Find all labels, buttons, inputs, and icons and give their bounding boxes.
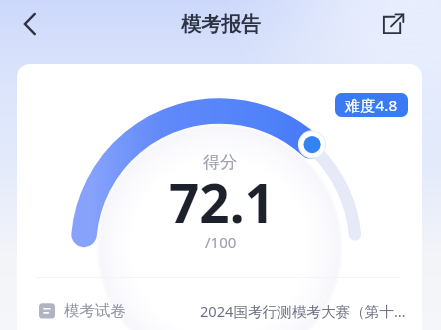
staticText: 72.1 xyxy=(169,166,275,238)
button[interactable]: 模考试卷 xyxy=(17,296,422,326)
button[interactable]: Share xyxy=(373,4,413,44)
staticText: 得分 xyxy=(203,152,237,173)
staticText: /100 xyxy=(205,232,237,252)
button[interactable]: 难度4.8 xyxy=(335,93,408,117)
staticText: 难度4.8 xyxy=(345,95,398,116)
staticText: 模考试卷 xyxy=(64,301,126,321)
staticText: 模考报告 xyxy=(181,12,261,37)
staticText: 2024国考行测模考大赛（第十… xyxy=(200,301,406,321)
button[interactable]: Back xyxy=(9,3,51,45)
